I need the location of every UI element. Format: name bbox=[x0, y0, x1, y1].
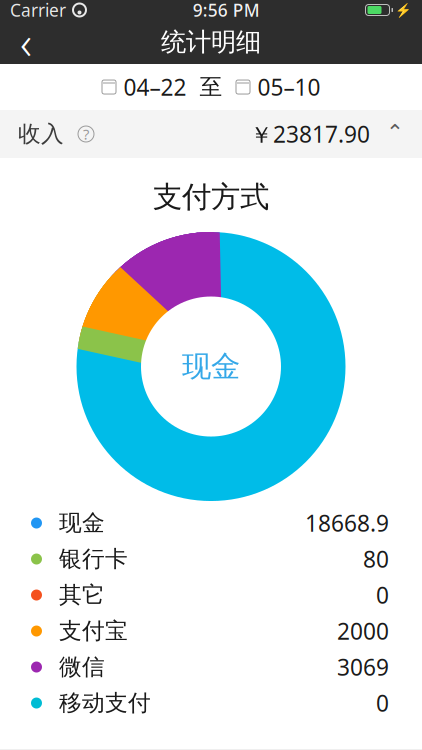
staticText: 05–10 bbox=[257, 72, 320, 102]
staticText: 微信 bbox=[59, 653, 105, 681]
staticText: 9:56 PM bbox=[193, 0, 260, 21]
staticText: ? bbox=[83, 124, 89, 144]
staticText: 04–22 bbox=[123, 72, 186, 102]
staticText: 统计明细 bbox=[161, 26, 261, 57]
button[interactable]: 微信 bbox=[0, 649, 422, 685]
button[interactable]: 现金 bbox=[0, 505, 422, 541]
staticText: 移动支付 bbox=[59, 689, 151, 717]
staticText: 现金 bbox=[182, 348, 240, 384]
staticText: ￥23817.90 bbox=[250, 119, 370, 149]
button[interactable]: 05–10 bbox=[235, 72, 320, 102]
button[interactable]: Back bbox=[0, 20, 52, 64]
staticText: ‹ bbox=[20, 12, 32, 72]
staticText: Carrier bbox=[10, 0, 66, 21]
staticText: 收入 bbox=[18, 120, 64, 148]
staticText: 18668.9 bbox=[305, 508, 389, 538]
button[interactable]: 银行卡 bbox=[0, 541, 422, 577]
staticText: 0 bbox=[376, 580, 389, 610]
staticText: ⌃ bbox=[386, 120, 404, 144]
staticText: 至 bbox=[199, 73, 222, 101]
staticText: 其它 bbox=[59, 581, 105, 609]
staticText: 0 bbox=[376, 688, 389, 718]
button[interactable]: 移动支付 bbox=[0, 685, 422, 721]
button[interactable]: 支付宝 bbox=[0, 613, 422, 649]
button[interactable]: 收入 bbox=[0, 110, 422, 158]
staticText: 银行卡 bbox=[59, 545, 128, 573]
button[interactable]: 其它 bbox=[0, 577, 422, 613]
staticText: 80 bbox=[363, 544, 389, 574]
staticText: 支付宝 bbox=[59, 617, 128, 645]
staticText: 支付方式 bbox=[153, 179, 269, 215]
staticText: ⚡ bbox=[395, 2, 412, 18]
button[interactable]: 04–22 bbox=[101, 72, 186, 102]
staticText: 现金 bbox=[59, 509, 105, 537]
staticText: 2000 bbox=[337, 616, 389, 646]
staticText: 3069 bbox=[337, 652, 389, 682]
